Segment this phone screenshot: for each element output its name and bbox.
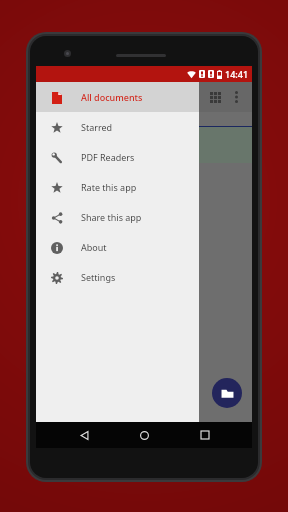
staticText: Settings: [81, 271, 116, 283]
button[interactable]: re: [36, 127, 252, 163]
button[interactable]: PDF Readers: [36, 142, 199, 172]
button[interactable]: Recent apps: [192, 422, 218, 448]
button[interactable]: [36, 163, 252, 197]
staticText: Starred: [81, 121, 113, 133]
button[interactable]: Settings: [36, 262, 199, 292]
staticText: Rate this app: [81, 181, 137, 193]
staticText: About: [81, 241, 107, 253]
button[interactable]: Back: [71, 422, 97, 448]
button[interactable]: More options: [226, 87, 246, 107]
button[interactable]: Rate this app: [36, 172, 199, 202]
button[interactable]: All documents: [36, 82, 199, 112]
button[interactable]: New folder: [212, 378, 242, 408]
button[interactable]: Share this app: [36, 202, 199, 232]
button[interactable]: Starred: [36, 112, 199, 142]
staticText: 14:41: [225, 68, 249, 80]
button[interactable]: Home: [131, 422, 157, 448]
staticText: Share this app: [81, 211, 142, 223]
button[interactable]: Grid view: [204, 86, 226, 108]
staticText: PDF Readers: [81, 151, 135, 163]
staticText: All documents: [81, 91, 143, 103]
button[interactable]: About: [36, 232, 199, 262]
